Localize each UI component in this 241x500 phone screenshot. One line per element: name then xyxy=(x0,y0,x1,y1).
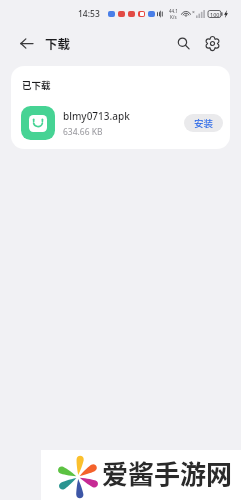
staticText: 已下载 xyxy=(22,78,51,92)
button[interactable]: blmy0713.apk xyxy=(11,106,230,140)
button[interactable]: Search xyxy=(170,30,196,56)
staticText: 14:53 xyxy=(78,8,100,20)
staticText: K/s xyxy=(170,14,177,20)
staticText: blmy0713.apk xyxy=(63,109,130,123)
staticText: 爱酱手游网 xyxy=(102,454,233,492)
button[interactable]: 安装 xyxy=(184,114,223,132)
staticText: 44.1 xyxy=(169,8,178,14)
staticText: 100 xyxy=(210,11,220,18)
button[interactable]: Back xyxy=(13,30,39,56)
staticText: 634.66 KB xyxy=(63,126,103,138)
staticText: 安装 xyxy=(194,116,214,130)
staticText: × xyxy=(192,9,195,16)
staticText: 下载 xyxy=(45,34,71,52)
button[interactable]: Settings xyxy=(199,30,225,56)
